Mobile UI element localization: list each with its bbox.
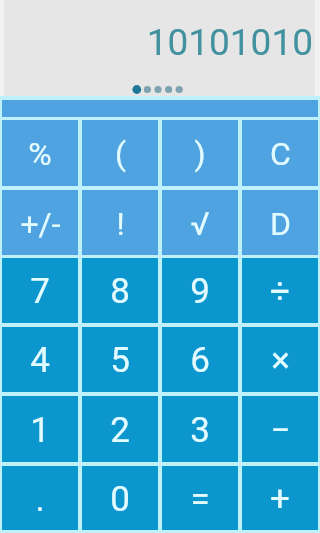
staticText: !: [116, 205, 125, 243]
staticText: 2: [110, 410, 130, 451]
button[interactable]: 2: [82, 396, 158, 462]
staticText: 9: [190, 271, 210, 312]
staticText: ×: [271, 340, 290, 381]
button[interactable]: 9: [162, 258, 238, 323]
staticText: C: [270, 135, 291, 173]
button[interactable]: (: [82, 120, 158, 186]
button[interactable]: 8: [82, 258, 158, 323]
button[interactable]: 3: [162, 396, 238, 462]
staticText: %: [28, 135, 52, 173]
button[interactable]: −: [242, 396, 318, 462]
staticText: −: [270, 410, 291, 451]
button[interactable]: 4: [2, 327, 78, 392]
staticText: ÷: [270, 271, 290, 312]
staticText: 8: [110, 271, 130, 312]
staticText: +/-: [20, 205, 61, 243]
staticText: D: [270, 205, 291, 243]
button[interactable]: .: [2, 466, 78, 530]
button[interactable]: √: [162, 190, 238, 255]
staticText: 6: [190, 340, 210, 381]
button[interactable]: C: [242, 120, 318, 186]
button[interactable]: ×: [242, 327, 318, 392]
button[interactable]: %: [2, 120, 78, 186]
button[interactable]: 5: [82, 327, 158, 392]
button[interactable]: +: [242, 466, 318, 530]
staticText: +: [270, 479, 290, 520]
staticText: (: [115, 135, 126, 173]
staticText: 7: [30, 271, 50, 312]
button[interactable]: ): [162, 120, 238, 186]
staticText: .: [35, 479, 45, 520]
staticText: 4: [30, 340, 50, 381]
button[interactable]: 1: [2, 396, 78, 462]
staticText: ): [194, 135, 206, 173]
button[interactable]: =: [162, 466, 238, 530]
button[interactable]: !: [82, 190, 158, 255]
button[interactable]: ÷: [242, 258, 318, 323]
staticText: 10101010: [146, 21, 313, 64]
staticText: 3: [190, 410, 210, 451]
staticText: =: [190, 479, 210, 520]
staticText: √: [190, 205, 210, 243]
button[interactable]: D: [242, 190, 318, 255]
staticText: 5: [110, 340, 130, 381]
staticText: 0: [110, 479, 130, 520]
button[interactable]: 6: [162, 327, 238, 392]
staticText: 1: [30, 410, 50, 451]
button[interactable]: +/-: [2, 190, 78, 255]
button[interactable]: 7: [2, 258, 78, 323]
button[interactable]: 0: [82, 466, 158, 530]
